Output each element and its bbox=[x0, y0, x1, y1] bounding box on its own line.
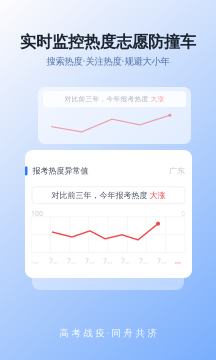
staticText: 高 考 战 疫 · 同 舟 共 济 bbox=[59, 327, 156, 339]
staticText: 100 bbox=[31, 209, 43, 218]
staticText: 报考热度异常值 bbox=[32, 166, 88, 176]
staticText: 7.14 bbox=[121, 256, 131, 265]
staticText: 7.15 bbox=[139, 256, 149, 265]
staticText: 广东 bbox=[169, 166, 185, 176]
staticText: 今天 bbox=[175, 256, 185, 265]
staticText: 对比前三年，今年报考热度 bbox=[51, 190, 149, 200]
staticText: 7.16 bbox=[157, 256, 167, 265]
staticText: 大涨 bbox=[150, 95, 164, 103]
staticText: 7.11 bbox=[67, 256, 77, 265]
staticText: 搜索热度·关注热度·规避大小年 bbox=[46, 55, 169, 67]
staticText: 实时监控热度志愿防撞车 bbox=[20, 32, 196, 52]
staticText: 7.10 bbox=[49, 256, 59, 265]
staticText: 7.12 bbox=[85, 256, 95, 265]
staticText: 7.13 bbox=[103, 256, 113, 265]
staticText: 大涨 bbox=[149, 190, 165, 200]
staticText: 0 bbox=[181, 209, 185, 218]
staticText: -100 bbox=[31, 256, 41, 265]
staticText: 对比前三年，今年报考热度 bbox=[64, 95, 150, 103]
